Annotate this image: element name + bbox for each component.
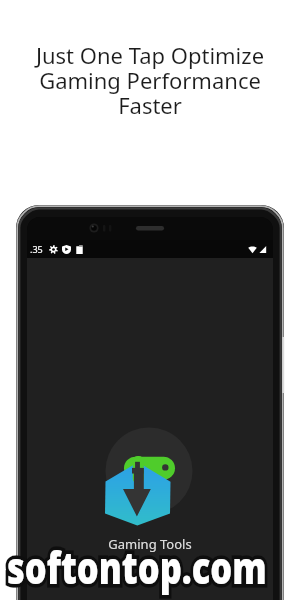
staticText: .35 bbox=[30, 243, 43, 255]
staticText: Gaming Tools bbox=[27, 535, 273, 553]
staticText: softontop.com bbox=[7, 537, 267, 597]
staticText: softontop.com bbox=[7, 537, 267, 597]
staticText: Just One Tap Optimize Gaming Performance… bbox=[0, 40, 300, 120]
